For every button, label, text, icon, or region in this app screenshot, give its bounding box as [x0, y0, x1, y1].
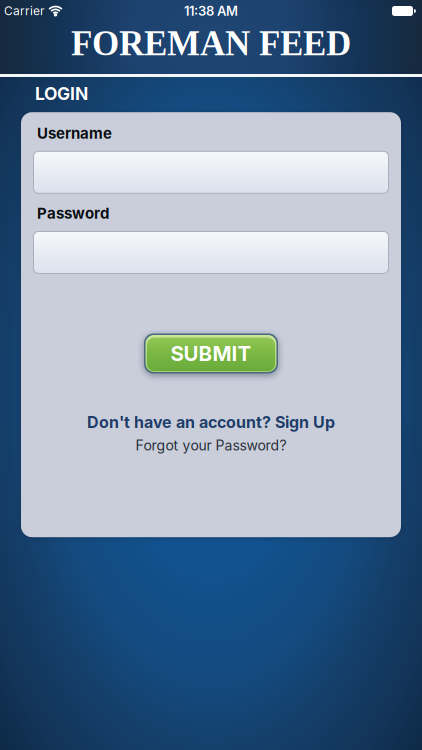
button[interactable]: Username text field	[33, 151, 388, 193]
button[interactable]: Password text field	[33, 231, 388, 273]
staticText: Password	[37, 204, 109, 222]
button[interactable]: Don't have an account? Sign Up	[87, 412, 335, 432]
staticText: LOGIN	[35, 83, 88, 104]
staticText: FOREMAN FEED	[71, 24, 351, 63]
staticText: Don't have an account? Sign Up	[87, 412, 335, 432]
staticText: Username	[37, 124, 112, 142]
staticText: Carrier	[4, 4, 45, 18]
staticText: 11:38 AM	[184, 3, 238, 19]
staticText: Forgot your Password?	[135, 437, 286, 454]
button[interactable]: Forgot your Password?	[135, 437, 286, 454]
button[interactable]: SUBMIT	[144, 333, 278, 373]
staticText: SUBMIT	[170, 341, 251, 366]
